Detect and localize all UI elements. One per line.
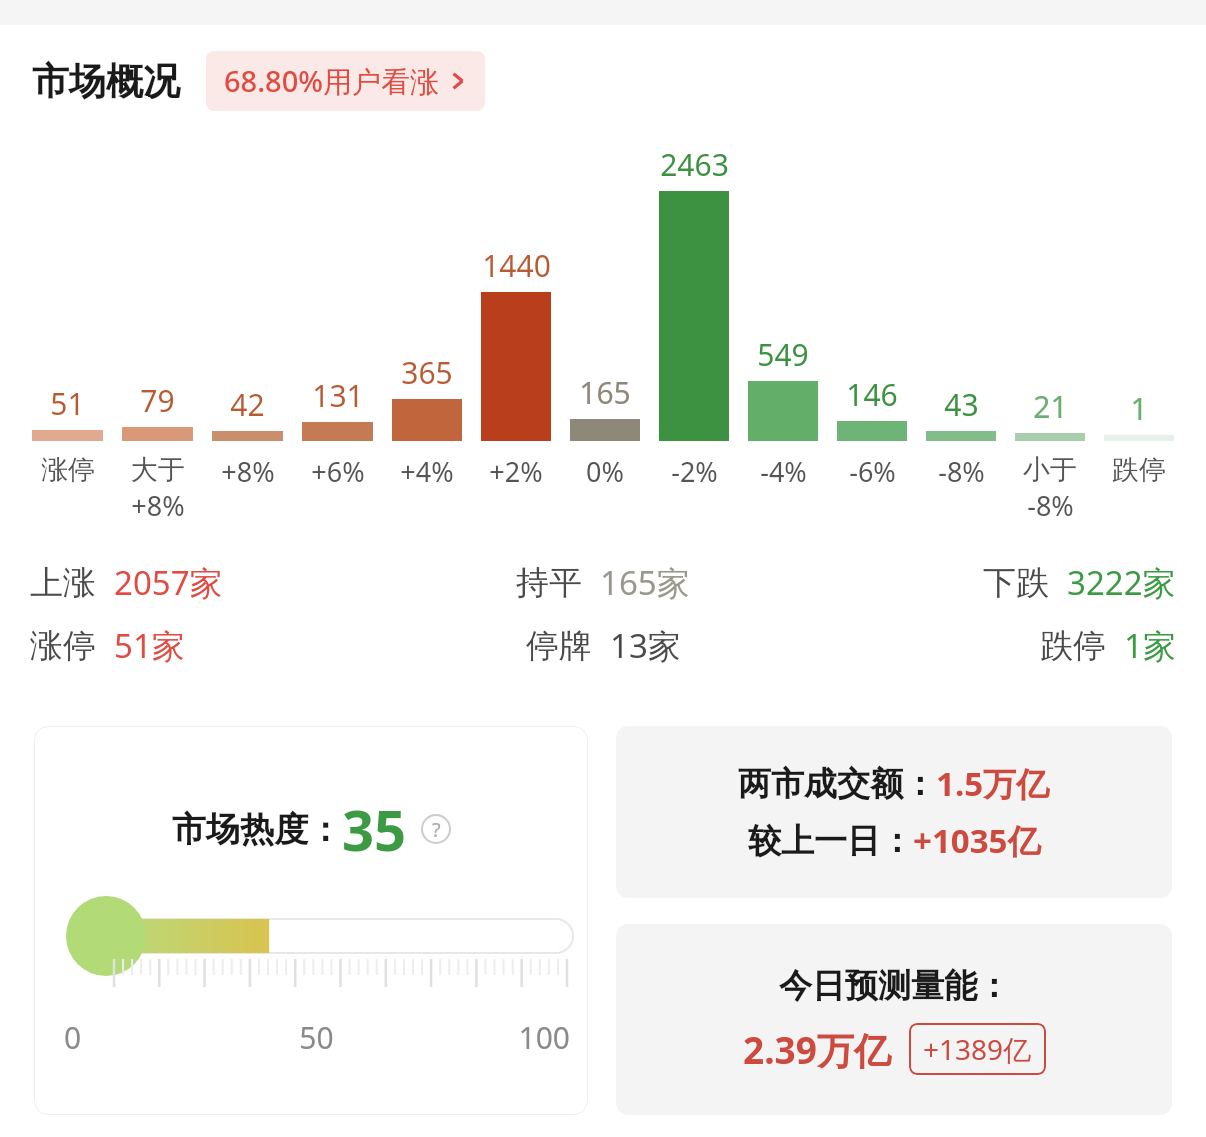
button[interactable]: 市场热度： — [34, 726, 588, 1115]
staticText: 0% — [586, 453, 624, 490]
staticText: 大于 — [131, 453, 185, 487]
staticText: 涨停 — [41, 453, 95, 487]
staticText: 131 — [312, 375, 364, 416]
staticText: 79 — [140, 380, 175, 421]
staticText: 1440 — [482, 245, 551, 286]
staticText: -6% — [849, 453, 896, 490]
staticText: 较上一日： — [748, 820, 913, 862]
staticText: 2463 — [660, 144, 729, 185]
staticText: +6% — [311, 453, 365, 490]
staticText: 1 — [1130, 388, 1148, 429]
staticText: 549 — [757, 334, 809, 375]
staticText: -4% — [760, 453, 807, 490]
staticText: 50 — [232, 1017, 401, 1058]
staticText: 21 — [1033, 386, 1068, 427]
staticText: 3222家 — [1067, 560, 1176, 605]
staticText: 跌停 — [1040, 625, 1106, 667]
staticText: 上涨 — [30, 562, 96, 604]
button[interactable]: 两市成交额： — [616, 726, 1172, 898]
staticText: 13家 — [610, 623, 681, 668]
staticText: -8% — [1027, 487, 1074, 524]
staticText: 43 — [944, 384, 979, 425]
staticText: 2057家 — [114, 560, 223, 605]
button[interactable]: 今日预测量能： — [616, 924, 1172, 1115]
staticText: +8% — [221, 453, 275, 490]
staticText: 1.5万亿 — [936, 761, 1050, 806]
staticText: 下跌 — [983, 562, 1049, 604]
staticText: 跌停 — [1112, 453, 1166, 487]
staticText: +4% — [400, 453, 454, 490]
staticText: +2% — [489, 453, 543, 490]
staticText: 51家 — [114, 623, 185, 668]
staticText: 持平 — [516, 562, 582, 604]
staticText: -2% — [671, 453, 718, 490]
staticText: 今日预测量能： — [779, 965, 1010, 1007]
staticText: 1家 — [1124, 623, 1176, 668]
button[interactable]: 市场热度说明 — [421, 814, 451, 844]
staticText: 两市成交额： — [738, 763, 936, 805]
staticText: 100 — [401, 1017, 570, 1058]
staticText: 小于 — [1023, 453, 1077, 487]
button[interactable]: 68.80%用户看涨 — [206, 51, 485, 111]
staticText: 涨停 — [30, 625, 96, 667]
staticText: 365 — [401, 352, 453, 393]
staticText: +1035亿 — [913, 818, 1041, 863]
staticText: +1389亿 — [923, 1030, 1032, 1068]
staticText: 51 — [50, 383, 85, 424]
staticText: 0 — [64, 1017, 232, 1058]
staticText: 市场概况 — [32, 58, 180, 105]
staticText: ? — [432, 816, 441, 843]
staticText: 165 — [579, 372, 631, 413]
staticText: 市场热度： — [172, 808, 342, 851]
staticText: +8% — [131, 487, 185, 524]
staticText: -8% — [938, 453, 985, 490]
staticText: 35 — [342, 791, 407, 867]
staticText: 146 — [846, 374, 898, 415]
staticText: 165家 — [600, 560, 690, 605]
staticText: 42 — [230, 384, 265, 425]
staticText: 停牌 — [526, 625, 592, 667]
staticText: 68.80%用户看涨 — [224, 61, 439, 101]
staticText: 2.39万亿 — [743, 1024, 891, 1075]
